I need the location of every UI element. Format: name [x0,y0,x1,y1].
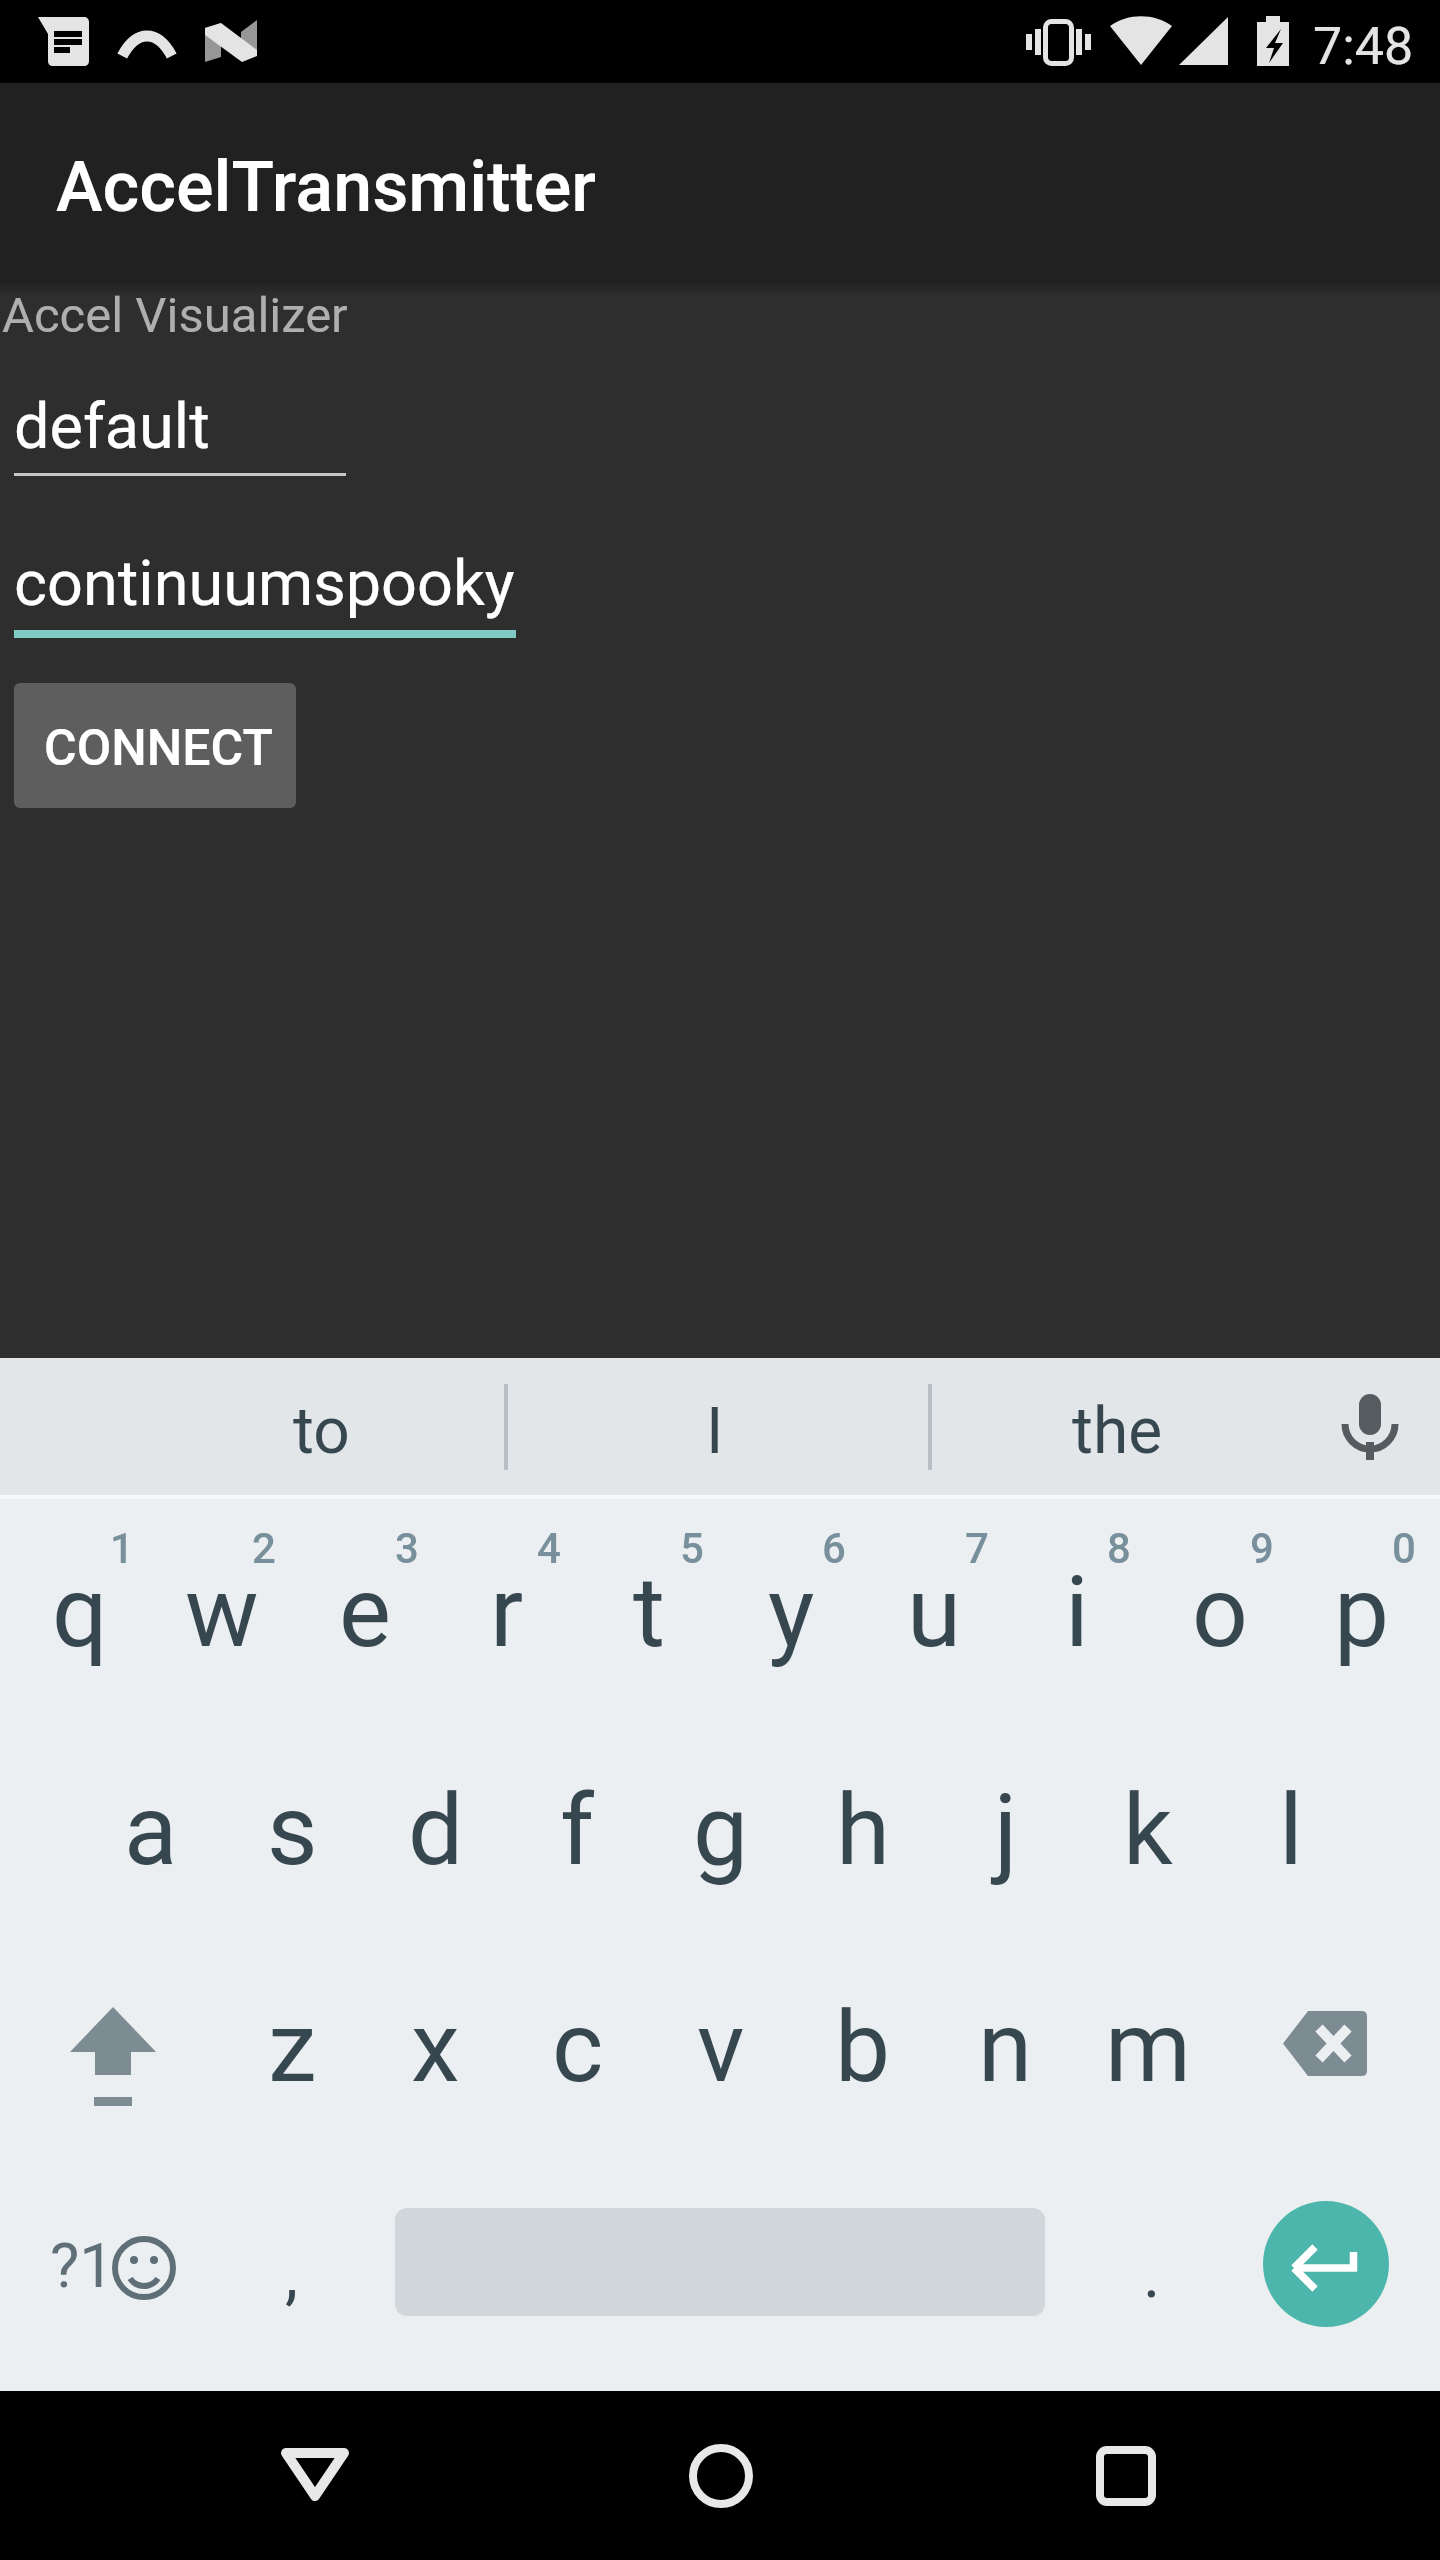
button[interactable]: z [221,1945,364,2168]
button[interactable]: Home [646,2391,796,2560]
button[interactable]: r [435,1499,578,1722]
staticText: the [1072,1394,1163,1469]
staticText: CONNECT [44,719,273,778]
button[interactable]: o [1148,1499,1291,1722]
staticText: Accel Visualizer [2,287,348,344]
button[interactable]: g [649,1722,792,1945]
button[interactable]: , [216,2168,394,2391]
staticText: 9 [1250,1524,1274,1573]
button[interactable]: . [1045,2168,1223,2391]
staticText: . [1143,2236,1161,2313]
button[interactable]: t [578,1499,721,1722]
button[interactable]: the [916,1358,1314,1495]
staticText: y [768,1555,815,1670]
button[interactable]: f [506,1722,649,1945]
staticText: , [285,2236,298,2313]
button[interactable]: c [506,1945,649,2168]
button[interactable]: i [1005,1499,1148,1722]
button[interactable]: CONNECT [14,683,296,808]
staticText: g [693,1773,749,1888]
staticText: 6 [822,1524,846,1573]
staticText: d [408,1773,464,1888]
staticText: v [697,1990,745,2105]
staticText: p [1334,1555,1390,1670]
staticText: r [490,1555,524,1670]
button[interactable]: l [1219,1722,1362,1945]
button[interactable]: w [150,1499,293,1722]
staticText: continuumspooky [14,547,515,621]
staticText: t [633,1555,666,1670]
staticText: c [552,1990,604,2105]
button[interactable]: u [863,1499,1006,1722]
button[interactable]: to [120,1358,518,1495]
button[interactable]: Back [240,2391,390,2560]
button[interactable]: q [8,1499,151,1722]
staticText: default [14,390,210,464]
staticText: 7 [965,1524,989,1573]
button[interactable]: Enter [1223,2168,1440,2391]
button[interactable]: s [221,1722,364,1945]
button[interactable]: Backspace [1224,1945,1440,2168]
button[interactable]: x [364,1945,507,2168]
staticText: a [124,1773,178,1888]
staticText: n [978,1990,1033,2105]
button[interactable]: Recent apps [1051,2391,1201,2560]
button[interactable]: Voice input [1300,1358,1440,1495]
button[interactable]: d [364,1722,507,1945]
staticText: u [907,1555,962,1670]
button[interactable]: k [1076,1722,1219,1945]
staticText: 0 [1392,1524,1416,1573]
staticText: o [1192,1555,1248,1670]
staticText: f [560,1773,595,1888]
staticText: 5 [680,1524,704,1573]
button[interactable]: j [934,1722,1077,1945]
button[interactable]: p [1290,1499,1433,1722]
button[interactable]: m [1076,1945,1219,2168]
staticText: x [411,1990,460,2105]
staticText: 2 [252,1524,276,1573]
staticText: i [1065,1555,1089,1670]
staticText: 4 [537,1524,561,1573]
staticText: 7:48 [1313,16,1414,77]
button[interactable]: v [649,1945,792,2168]
staticText: I [706,1394,724,1469]
staticText: b [835,1990,891,2105]
button[interactable]: Shift [0,1945,216,2168]
staticText: k [1123,1773,1173,1888]
staticText: 3 [395,1524,419,1573]
staticText: e [339,1555,391,1670]
button[interactable]: e [293,1499,436,1722]
staticText: z [268,1990,317,2105]
staticText: q [52,1555,108,1670]
staticText: to [293,1394,350,1469]
staticText: 1 [110,1524,134,1573]
staticText: 8 [1107,1524,1131,1573]
staticText: s [267,1773,318,1888]
staticText: j [994,1773,1018,1888]
button[interactable]: y [720,1499,863,1722]
staticText: h [836,1773,890,1888]
staticText: m [1105,1990,1191,2105]
staticText: AccelTransmitter [56,146,596,228]
button[interactable]: a [79,1722,222,1945]
button[interactable]: n [934,1945,1077,2168]
staticText: l [1279,1773,1303,1888]
button[interactable]: I [514,1358,912,1495]
button[interactable]: b [791,1945,934,2168]
button[interactable]: h [791,1722,934,1945]
staticText: ?1 [50,2229,115,2302]
button[interactable]: Symbols and emoji [0,2168,216,2391]
staticText: w [185,1555,259,1670]
